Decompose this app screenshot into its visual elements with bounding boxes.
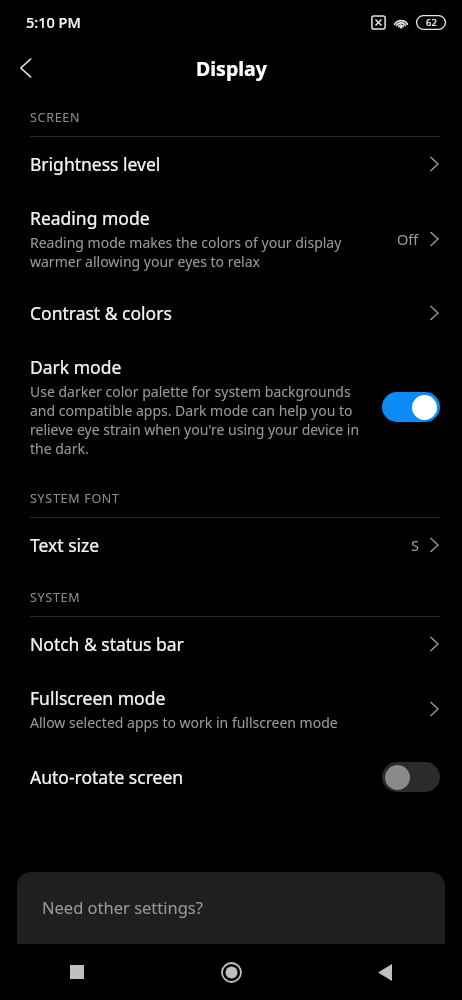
button[interactable]: Need other settings? — [17, 872, 445, 944]
button[interactable]: Recents — [0, 944, 154, 1000]
staticText: S — [411, 535, 419, 555]
button[interactable]: Text size — [0, 518, 462, 572]
staticText: Text size — [30, 533, 100, 557]
staticText: Fullscreen mode — [30, 686, 166, 710]
staticText: 62 — [426, 16, 437, 29]
staticText: Contrast & colors — [30, 301, 172, 325]
staticText: Off — [397, 229, 419, 249]
button[interactable]: Back — [308, 944, 462, 1000]
staticText: Reading mode — [30, 206, 150, 230]
button[interactable]: Home — [154, 944, 308, 1000]
staticText: Brightness level — [30, 152, 161, 176]
staticText: Reading mode makes the colors of your di… — [30, 233, 385, 271]
button[interactable]: Fullscreen mode — [0, 671, 462, 747]
staticText: Dark mode — [30, 355, 122, 379]
staticText: SYSTEM FONT — [30, 490, 120, 507]
staticText: SCREEN — [30, 109, 81, 126]
staticText: SYSTEM — [30, 589, 81, 606]
button[interactable]: Back — [0, 44, 52, 92]
button[interactable]: Contrast & colors — [0, 286, 462, 340]
staticText: Use darker color palette for system back… — [30, 382, 370, 458]
button[interactable]: Notch & status bar — [0, 617, 462, 671]
button[interactable]: Dark mode — [382, 392, 440, 422]
staticText: Allow selected apps to work in fullscree… — [30, 713, 338, 732]
staticText: Display — [196, 55, 267, 82]
button[interactable]: Auto-rotate screen — [0, 747, 462, 807]
staticText: Notch & status bar — [30, 632, 184, 656]
staticText: Need other settings? — [42, 896, 203, 918]
staticText: 5:10 PM — [26, 12, 81, 32]
button[interactable]: Reading mode — [0, 191, 462, 286]
button[interactable]: Dark mode — [0, 340, 462, 473]
button[interactable]: Auto-rotate screen — [382, 762, 440, 792]
button[interactable]: Brightness level — [0, 137, 462, 191]
staticText: Auto-rotate screen — [30, 765, 184, 789]
